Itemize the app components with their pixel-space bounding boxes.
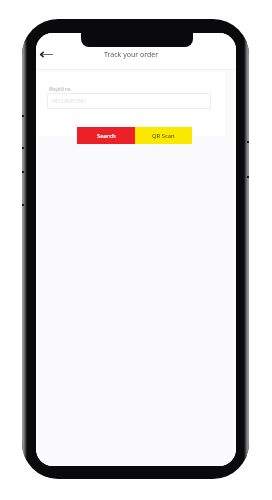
button[interactable]: Search — [77, 127, 135, 144]
button[interactable]: Back — [37, 45, 55, 63]
staticText: Search — [97, 132, 116, 140]
staticText: QR Scan — [152, 132, 175, 140]
staticText: Track your order — [104, 50, 159, 60]
staticText: Waybill no. — [49, 86, 72, 92]
button[interactable]: AE1234567891 — [47, 93, 211, 109]
staticText: AE1234567891 — [52, 98, 87, 105]
button[interactable]: QR Scan — [135, 127, 192, 144]
